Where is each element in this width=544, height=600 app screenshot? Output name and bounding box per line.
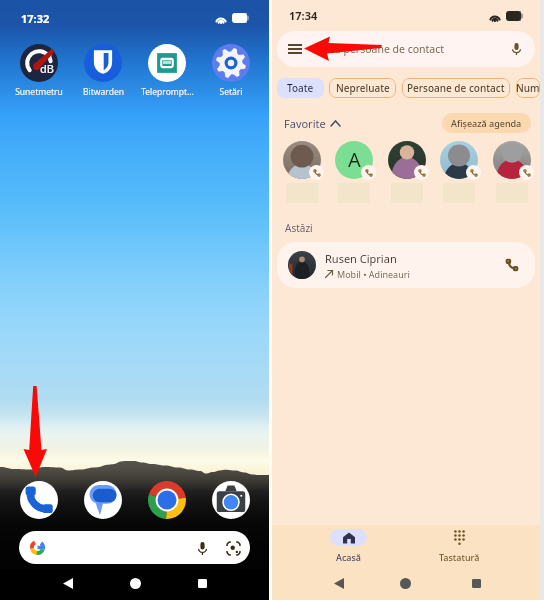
staticText: 17:34 (289, 8, 318, 23)
button[interactable]: Persoane de contact (402, 78, 510, 98)
button[interactable]: Menu (277, 31, 535, 67)
button[interactable]: Google Lens (223, 538, 243, 558)
staticText: Tastatură (439, 551, 480, 563)
staticText: Rusen Ciprian (325, 251, 397, 266)
staticText: Numere (516, 81, 540, 95)
staticText: Setări (219, 86, 243, 98)
button[interactable]: Numere (516, 78, 540, 98)
button[interactable]: Home (389, 568, 421, 599)
staticText: 17:32 (21, 11, 50, 26)
staticText: dB (40, 61, 55, 76)
button[interactable]: Call (499, 252, 525, 278)
staticText: Teleprompt... (141, 86, 194, 98)
button[interactable]: Back (52, 568, 84, 599)
staticText: Afișează agenda (451, 117, 522, 129)
button[interactable]: Acasă (310, 525, 386, 569)
staticText: Bitwarden (83, 86, 124, 98)
button[interactable]: Voice search (192, 538, 212, 558)
button[interactable]: Chrome (148, 481, 186, 519)
staticText: Toate (287, 81, 314, 95)
staticText: Favorite (284, 116, 326, 131)
button[interactable]: Favorite contact (333, 141, 375, 203)
button[interactable]: Nepreluate (329, 78, 396, 98)
staticText: Persoane de contact (407, 81, 505, 95)
button[interactable]: Favorite contact (438, 141, 480, 203)
staticText: A (348, 146, 361, 173)
button[interactable]: Recents (460, 568, 492, 599)
button[interactable]: Recents (186, 568, 218, 599)
button[interactable]: Voice search (505, 38, 527, 60)
button[interactable]: Rusen Ciprian (277, 242, 535, 288)
button[interactable]: Tastatură (421, 525, 497, 569)
button[interactable]: Afișează agenda (442, 113, 531, 133)
button[interactable]: Favorite contact (491, 141, 533, 203)
button[interactable]: Home (119, 568, 151, 599)
staticText: Astăzi (285, 221, 313, 235)
button[interactable]: Menu (282, 36, 308, 62)
staticText: Acasă (336, 551, 361, 563)
staticText: Caută persoane de contact (312, 42, 445, 56)
staticText: Sunetmetru (15, 86, 63, 98)
button[interactable]: Camera (212, 481, 250, 519)
button[interactable]: Setări (199, 44, 263, 98)
button[interactable]: Messages (84, 481, 122, 519)
button[interactable]: Toate (277, 78, 324, 98)
staticText: Nepreluate (336, 81, 390, 95)
button[interactable]: Phone (20, 481, 58, 519)
button[interactable]: Favorite contact (281, 141, 323, 203)
staticText: Mobil • Adineauri (337, 268, 410, 280)
button[interactable]: Sunetmetru (7, 44, 71, 98)
button[interactable]: Favorite (284, 116, 340, 131)
button[interactable]: Back (323, 568, 355, 599)
button[interactable]: Favorite contact (386, 141, 428, 203)
button[interactable]: Teleprompt... (135, 44, 199, 98)
button[interactable]: Bitwarden (71, 44, 135, 98)
button[interactable]: Voice search (19, 531, 250, 564)
